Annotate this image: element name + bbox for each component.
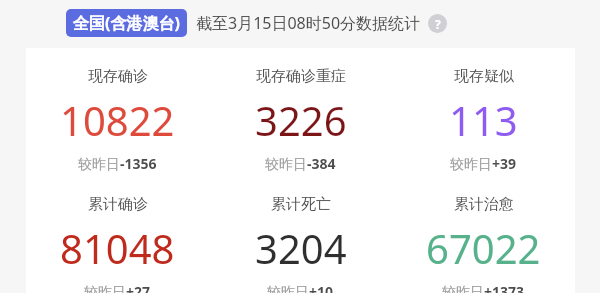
button[interactable]: 现存确诊 xyxy=(26,67,209,173)
staticText: 现存疑似 xyxy=(454,67,514,86)
button[interactable]: 现存确诊重症 xyxy=(209,67,392,173)
button[interactable]: 累计死亡 xyxy=(209,195,392,293)
button[interactable]: 累计确诊 xyxy=(26,195,209,293)
staticText: 较昨日+39 xyxy=(450,154,517,173)
staticText: 10822 xyxy=(60,93,175,147)
staticText: 81048 xyxy=(60,221,175,275)
button[interactable]: 现存疑似 xyxy=(392,67,575,173)
staticText: 较昨日+10 xyxy=(267,282,334,293)
button[interactable]: 帮助说明 xyxy=(428,14,447,33)
staticText: 累计死亡 xyxy=(271,195,331,214)
staticText: 较昨日+1373 xyxy=(442,282,525,293)
staticText: 全国(含港澳台) xyxy=(73,12,180,34)
staticText: 67022 xyxy=(426,221,541,275)
staticText: 较昨日-1356 xyxy=(78,154,157,173)
staticText: 3204 xyxy=(255,221,347,275)
button[interactable]: 累计治愈 xyxy=(392,195,575,293)
staticText: 截至3月15日08时50分数据统计 xyxy=(196,12,421,34)
button[interactable]: 全国(含港澳台) xyxy=(66,9,187,37)
staticText: 较昨日-384 xyxy=(265,154,336,173)
staticText: ? xyxy=(435,16,441,32)
staticText: 113 xyxy=(449,93,518,147)
staticText: 3226 xyxy=(255,93,347,147)
staticText: 较昨日+27 xyxy=(84,282,151,293)
staticText: 现存确诊重症 xyxy=(256,67,346,86)
staticText: 累计确诊 xyxy=(88,195,148,214)
staticText: 现存确诊 xyxy=(88,67,148,86)
staticText: 累计治愈 xyxy=(454,195,514,214)
